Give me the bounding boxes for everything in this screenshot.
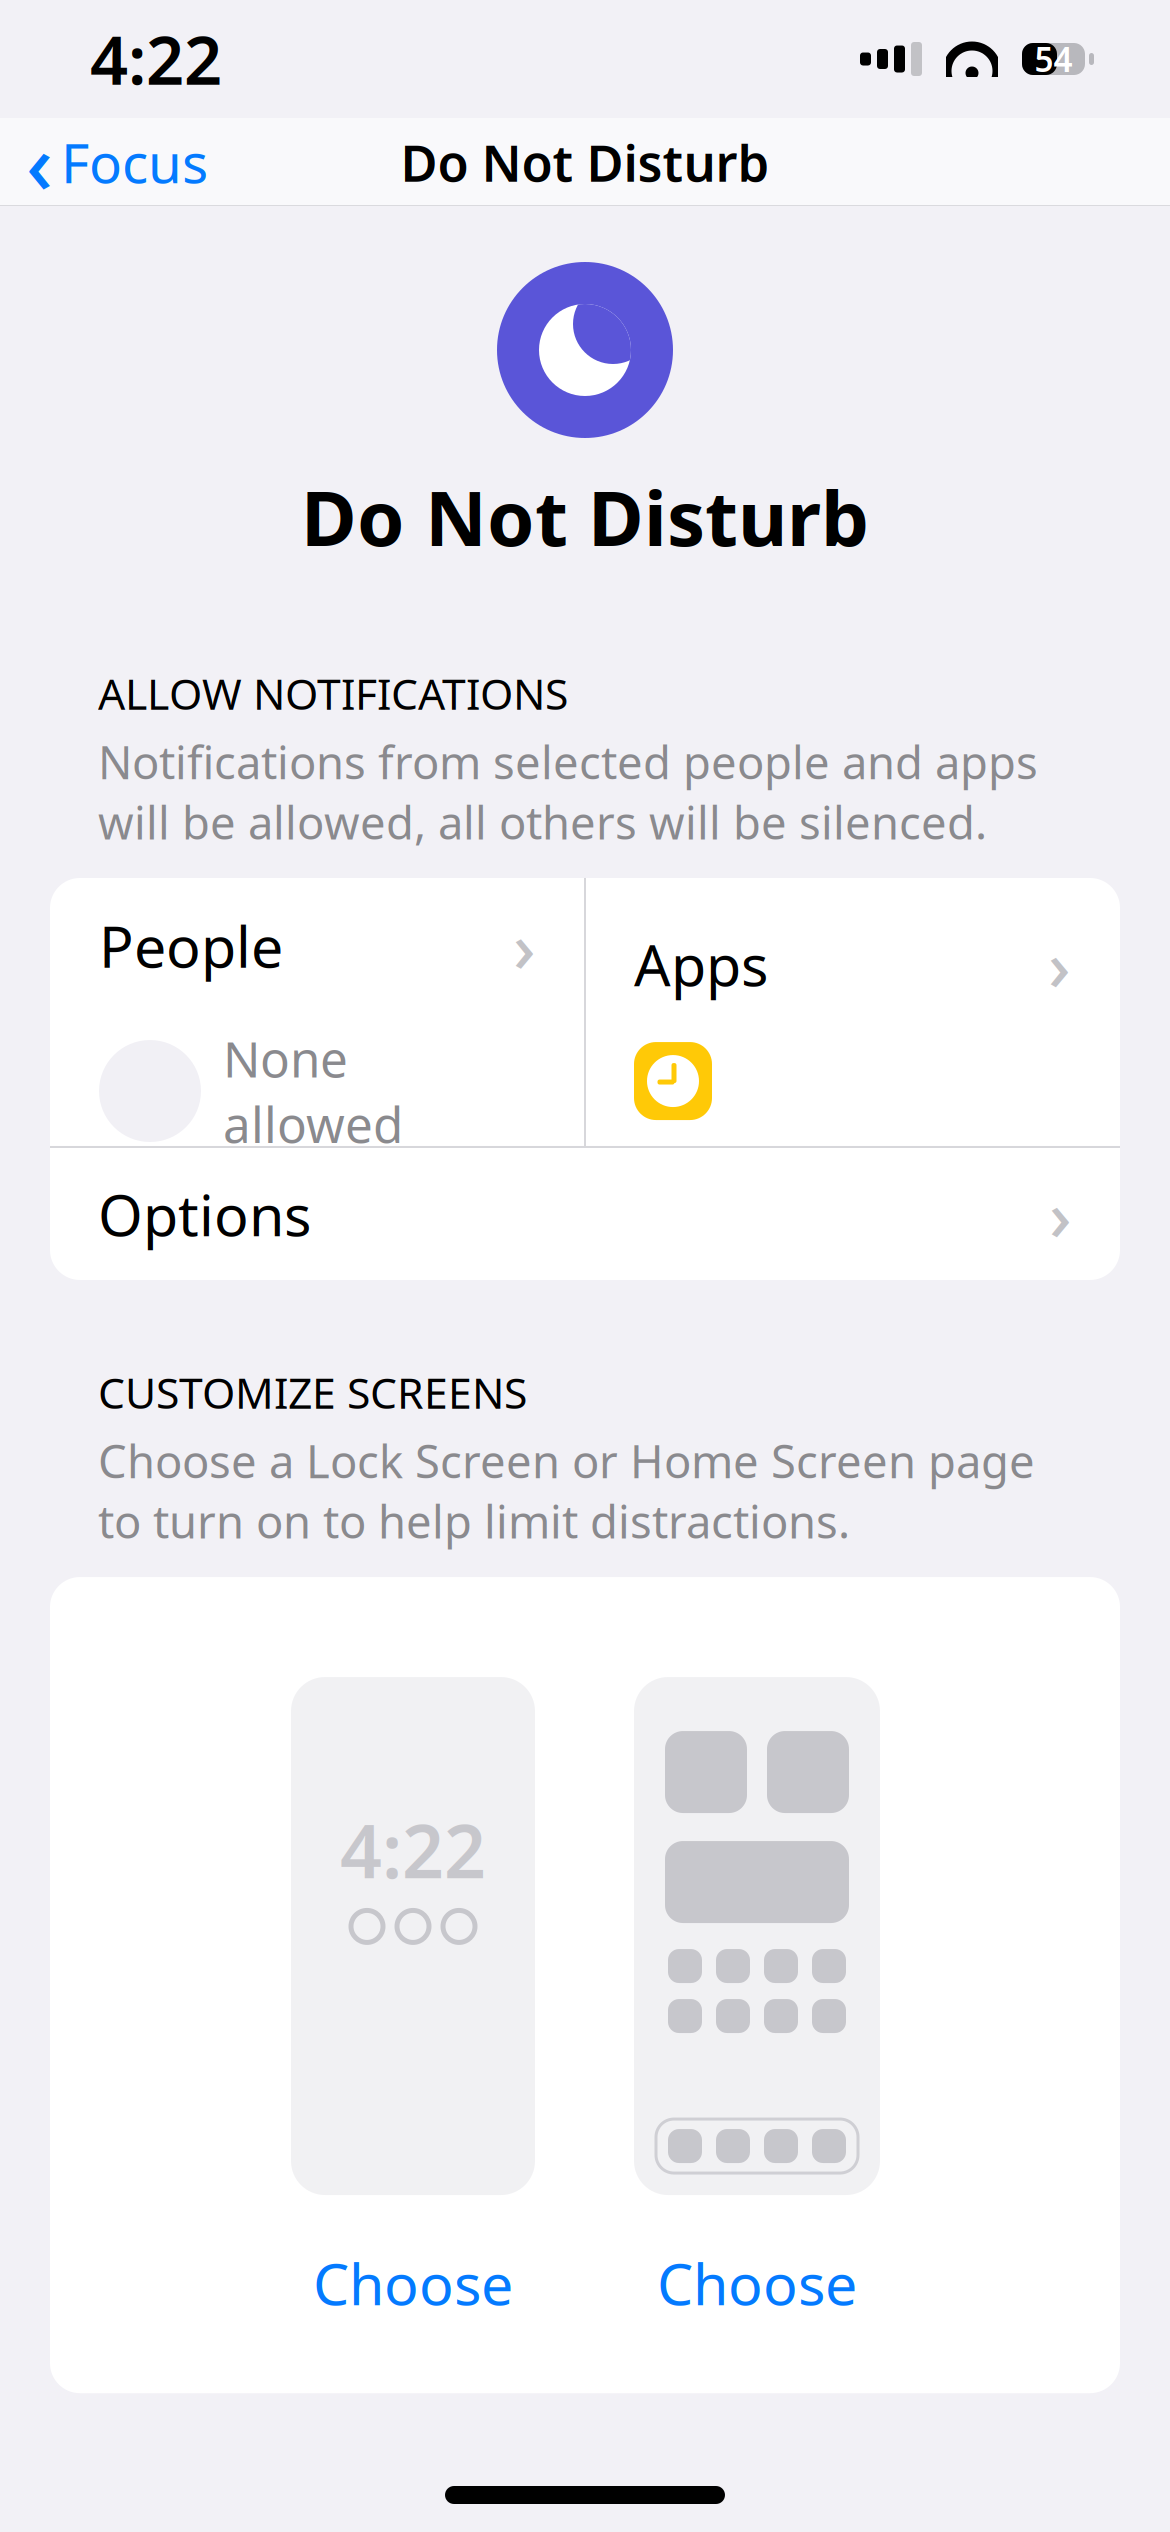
- staticText: ‹: [26, 107, 53, 217]
- staticText: Choose: [313, 2245, 513, 2321]
- staticText: Options: [98, 1176, 311, 1252]
- staticText: Choose: [657, 2245, 857, 2321]
- staticText: CUSTOMIZE SCREENS: [98, 1364, 527, 1421]
- staticText: ›: [1048, 918, 1071, 1010]
- staticText: ›: [1049, 1168, 1072, 1260]
- staticText: Apps: [634, 926, 768, 1002]
- staticText: 4:22: [340, 1801, 486, 1898]
- button[interactable]: People: [51, 878, 584, 1146]
- staticText: Do Not Disturb: [400, 128, 769, 196]
- staticText: Do Not Disturb: [301, 466, 869, 567]
- button[interactable]: ‹: [0, 118, 226, 206]
- staticText: Focus: [61, 126, 208, 198]
- button[interactable]: Apps: [586, 878, 1119, 1146]
- staticText: Choose a Lock Screen or Home Screen page…: [98, 1431, 1035, 1551]
- button[interactable]: Choose: [279, 2235, 547, 2331]
- staticText: 4:22: [90, 15, 222, 103]
- button[interactable]: Options: [50, 1148, 1120, 1280]
- button[interactable]: Choose: [623, 2235, 891, 2331]
- staticText: None allowed: [223, 1025, 403, 1156]
- staticText: ›: [513, 899, 536, 991]
- staticText: People: [99, 907, 283, 983]
- staticText: Notifications from selected people and a…: [98, 732, 1038, 852]
- staticText: ALLOW NOTIFICATIONS: [98, 665, 568, 722]
- staticText: 54: [1034, 37, 1072, 81]
